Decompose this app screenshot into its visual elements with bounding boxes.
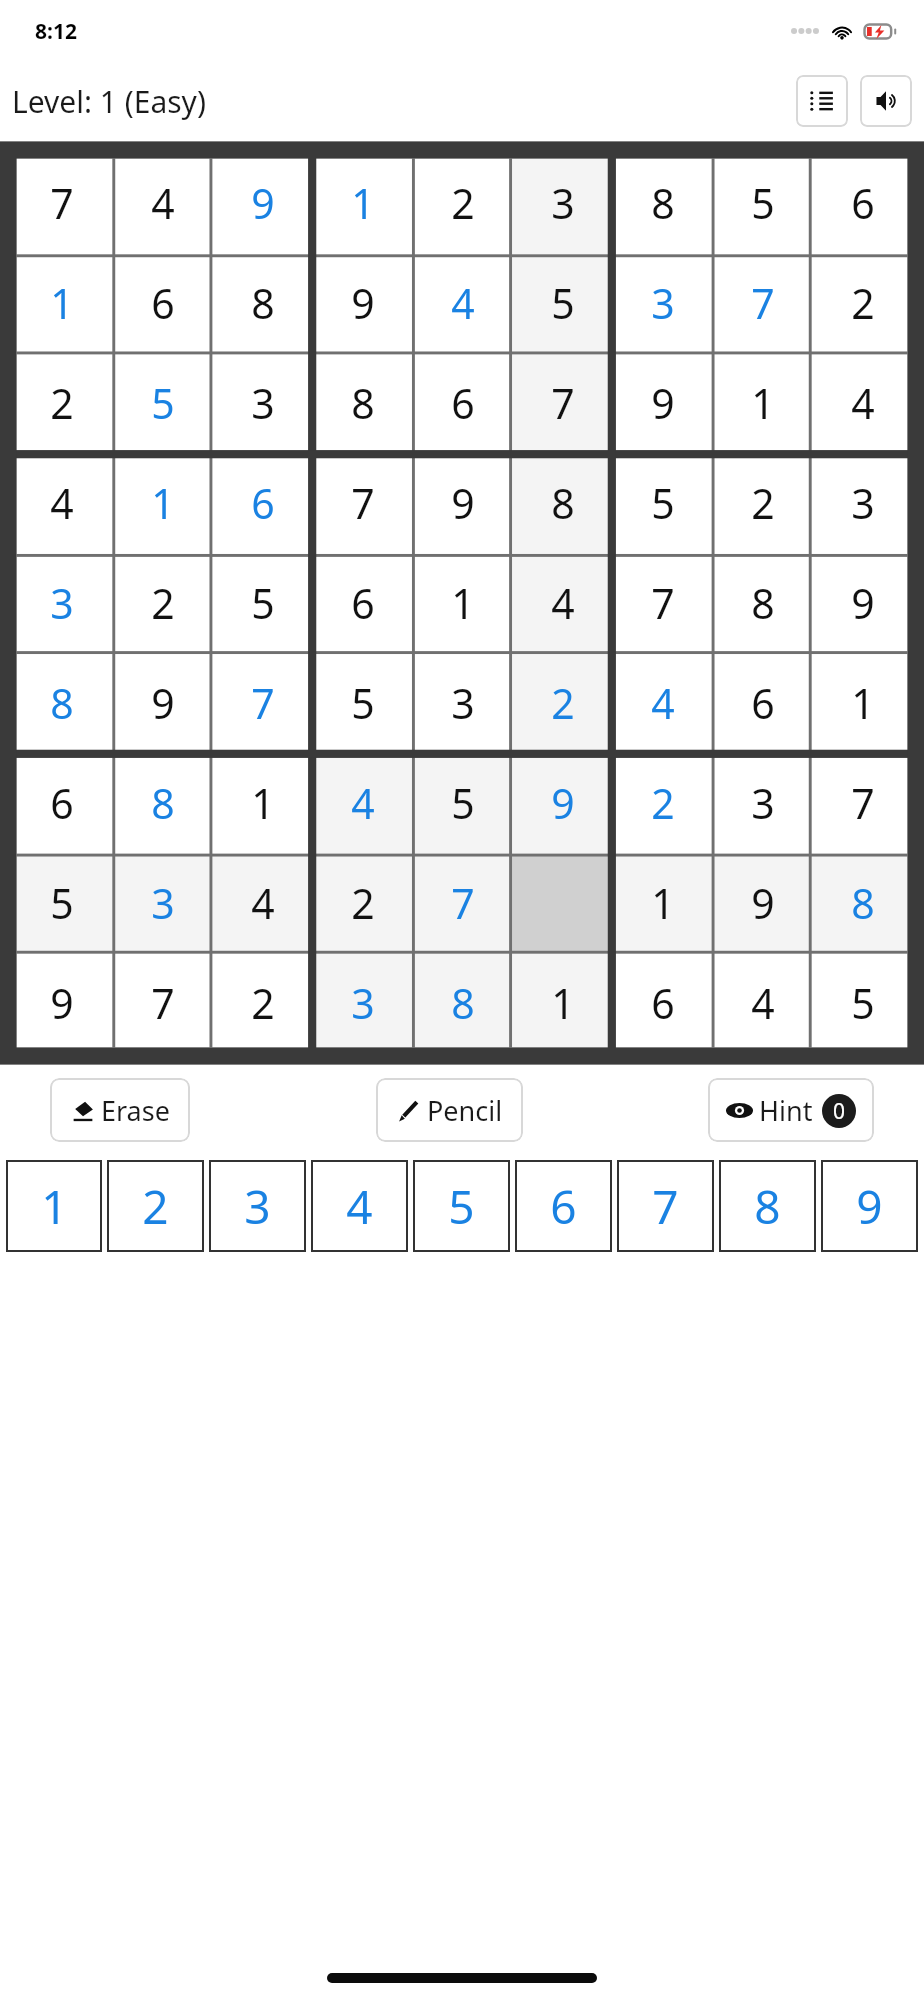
button[interactable]: 5 (213, 553, 313, 653)
button[interactable]: 9 (11, 953, 112, 1053)
button[interactable]: 1 (213, 753, 313, 853)
button[interactable]: 4 (713, 953, 813, 1053)
button[interactable]: 8 (713, 553, 813, 653)
button[interactable]: 6 (515, 1160, 612, 1252)
button[interactable]: Level list (796, 75, 848, 127)
button[interactable]: 2 (112, 553, 213, 653)
button[interactable]: 7 (413, 853, 513, 953)
button[interactable]: 1 (813, 653, 913, 753)
button[interactable]: 2 (413, 153, 513, 253)
button[interactable]: 5 (613, 453, 713, 553)
button[interactable]: 2 (213, 953, 313, 1053)
button[interactable]: 7 (713, 253, 813, 353)
button[interactable]: 6 (713, 653, 813, 753)
button[interactable]: 6 (213, 453, 313, 553)
button[interactable]: 7 (313, 453, 413, 553)
button[interactable]: 8 (613, 153, 713, 253)
button[interactable]: Erase (50, 1078, 190, 1142)
staticText: 4 (50, 475, 74, 531)
button[interactable]: 5 (413, 1160, 510, 1252)
button[interactable]: 4 (813, 353, 913, 453)
button[interactable]: 9 (213, 153, 313, 253)
button[interactable]: 5 (11, 853, 112, 953)
button[interactable]: 6 (11, 753, 112, 853)
button[interactable]: 9 (821, 1160, 918, 1252)
button[interactable]: 4 (413, 253, 513, 353)
button[interactable]: 3 (813, 453, 913, 553)
button[interactable]: 3 (713, 753, 813, 853)
button[interactable]: 3 (209, 1160, 306, 1252)
button[interactable]: 3 (513, 153, 613, 253)
button[interactable]: 7 (112, 953, 213, 1053)
button[interactable]: 6 (413, 353, 513, 453)
button[interactable]: 4 (313, 753, 413, 853)
button[interactable]: 1 (613, 853, 713, 953)
button[interactable]: 3 (11, 553, 112, 653)
button[interactable]: 8 (112, 753, 213, 853)
button[interactable]: 2 (313, 853, 413, 953)
button[interactable]: 4 (213, 853, 313, 953)
button[interactable]: 8 (813, 853, 913, 953)
button[interactable]: 3 (213, 353, 313, 453)
button[interactable]: 8 (213, 253, 313, 353)
button[interactable]: Pencil (376, 1078, 523, 1142)
button[interactable]: 6 (813, 153, 913, 253)
button[interactable]: 5 (413, 753, 513, 853)
button[interactable]: 8 (719, 1160, 816, 1252)
button[interactable]: 3 (613, 253, 713, 353)
button[interactable]: 1 (313, 153, 413, 253)
button[interactable]: 6 (313, 553, 413, 653)
button[interactable]: 9 (112, 653, 213, 753)
staticText: 9 (251, 175, 275, 231)
button[interactable]: Sound (860, 75, 912, 127)
button[interactable]: 9 (813, 553, 913, 653)
button[interactable]: 7 (613, 553, 713, 653)
button[interactable]: 4 (112, 153, 213, 253)
button[interactable]: 5 (313, 653, 413, 753)
button[interactable]: 7 (513, 353, 613, 453)
button[interactable]: 8 (513, 453, 613, 553)
button[interactable]: 9 (713, 853, 813, 953)
button[interactable]: 6 (613, 953, 713, 1053)
button[interactable]: 9 (413, 453, 513, 553)
button[interactable]: 1 (413, 553, 513, 653)
button[interactable]: 7 (813, 753, 913, 853)
button[interactable]: 1 (6, 1160, 102, 1252)
button[interactable]: 2 (107, 1160, 204, 1252)
button[interactable]: 1 (513, 953, 613, 1053)
button[interactable]: 7 (11, 153, 112, 253)
button[interactable]: 2 (513, 653, 613, 753)
staticText: 4 (251, 875, 275, 931)
button[interactable] (513, 853, 613, 953)
button[interactable]: 3 (413, 653, 513, 753)
button[interactable]: 8 (413, 953, 513, 1053)
button[interactable]: 3 (313, 953, 413, 1053)
button[interactable]: 1 (112, 453, 213, 553)
button[interactable]: 7 (617, 1160, 714, 1252)
button[interactable]: 4 (613, 653, 713, 753)
button[interactable]: 4 (11, 453, 112, 553)
button[interactable]: 1 (11, 253, 112, 353)
button[interactable]: 5 (713, 153, 813, 253)
button[interactable]: 1 (713, 353, 813, 453)
button[interactable]: 4 (513, 553, 613, 653)
button[interactable]: 5 (112, 353, 213, 453)
button[interactable]: 5 (513, 253, 613, 353)
button[interactable]: 2 (613, 753, 713, 853)
button[interactable]: 8 (11, 653, 112, 753)
button[interactable]: 3 (112, 853, 213, 953)
button[interactable]: 9 (613, 353, 713, 453)
staticText: Erase (101, 1092, 170, 1129)
button[interactable]: 9 (513, 753, 613, 853)
button[interactable]: Hint (708, 1078, 874, 1142)
button[interactable]: 7 (213, 653, 313, 753)
button[interactable]: 9 (313, 253, 413, 353)
button[interactable]: 8 (313, 353, 413, 453)
staticText: 2 (651, 775, 675, 831)
button[interactable]: 4 (311, 1160, 408, 1252)
button[interactable]: 2 (11, 353, 112, 453)
button[interactable]: 2 (813, 253, 913, 353)
button[interactable]: 6 (112, 253, 213, 353)
button[interactable]: 2 (713, 453, 813, 553)
button[interactable]: 5 (813, 953, 913, 1053)
